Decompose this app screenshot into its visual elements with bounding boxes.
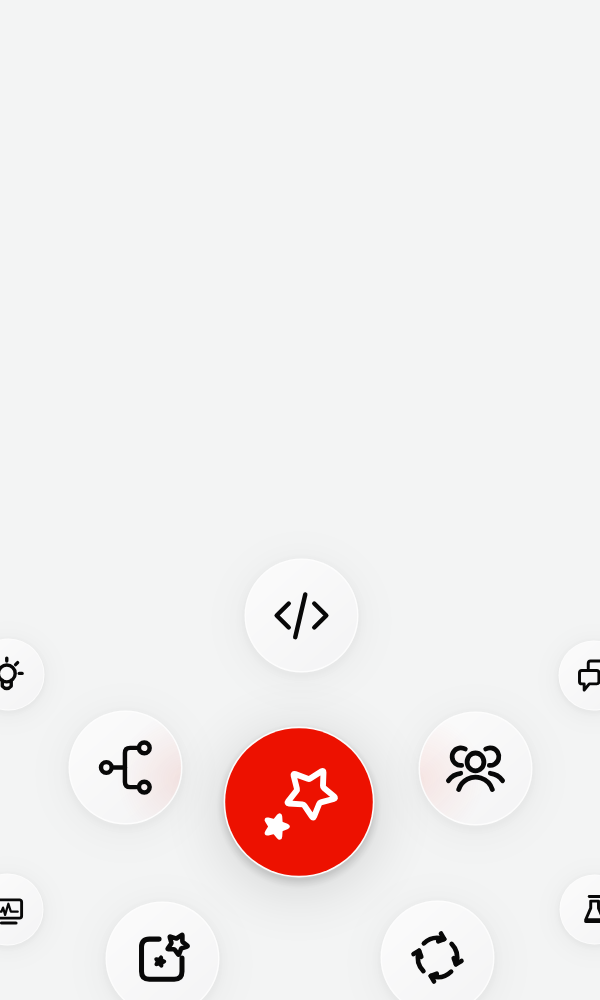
button[interactable]: Messages [527,609,600,742]
button[interactable]: Stamp [528,843,600,976]
button[interactable]: Activity monitor [0,841,76,978]
button[interactable]: Enhance [54,850,271,1000]
button[interactable]: Community [367,660,584,877]
button[interactable]: Ideas [0,606,77,743]
button[interactable]: Code [193,507,410,724]
button[interactable]: Sync [329,849,546,1000]
button[interactable]: AI Assistant [170,673,428,931]
button[interactable]: Share [17,659,234,876]
